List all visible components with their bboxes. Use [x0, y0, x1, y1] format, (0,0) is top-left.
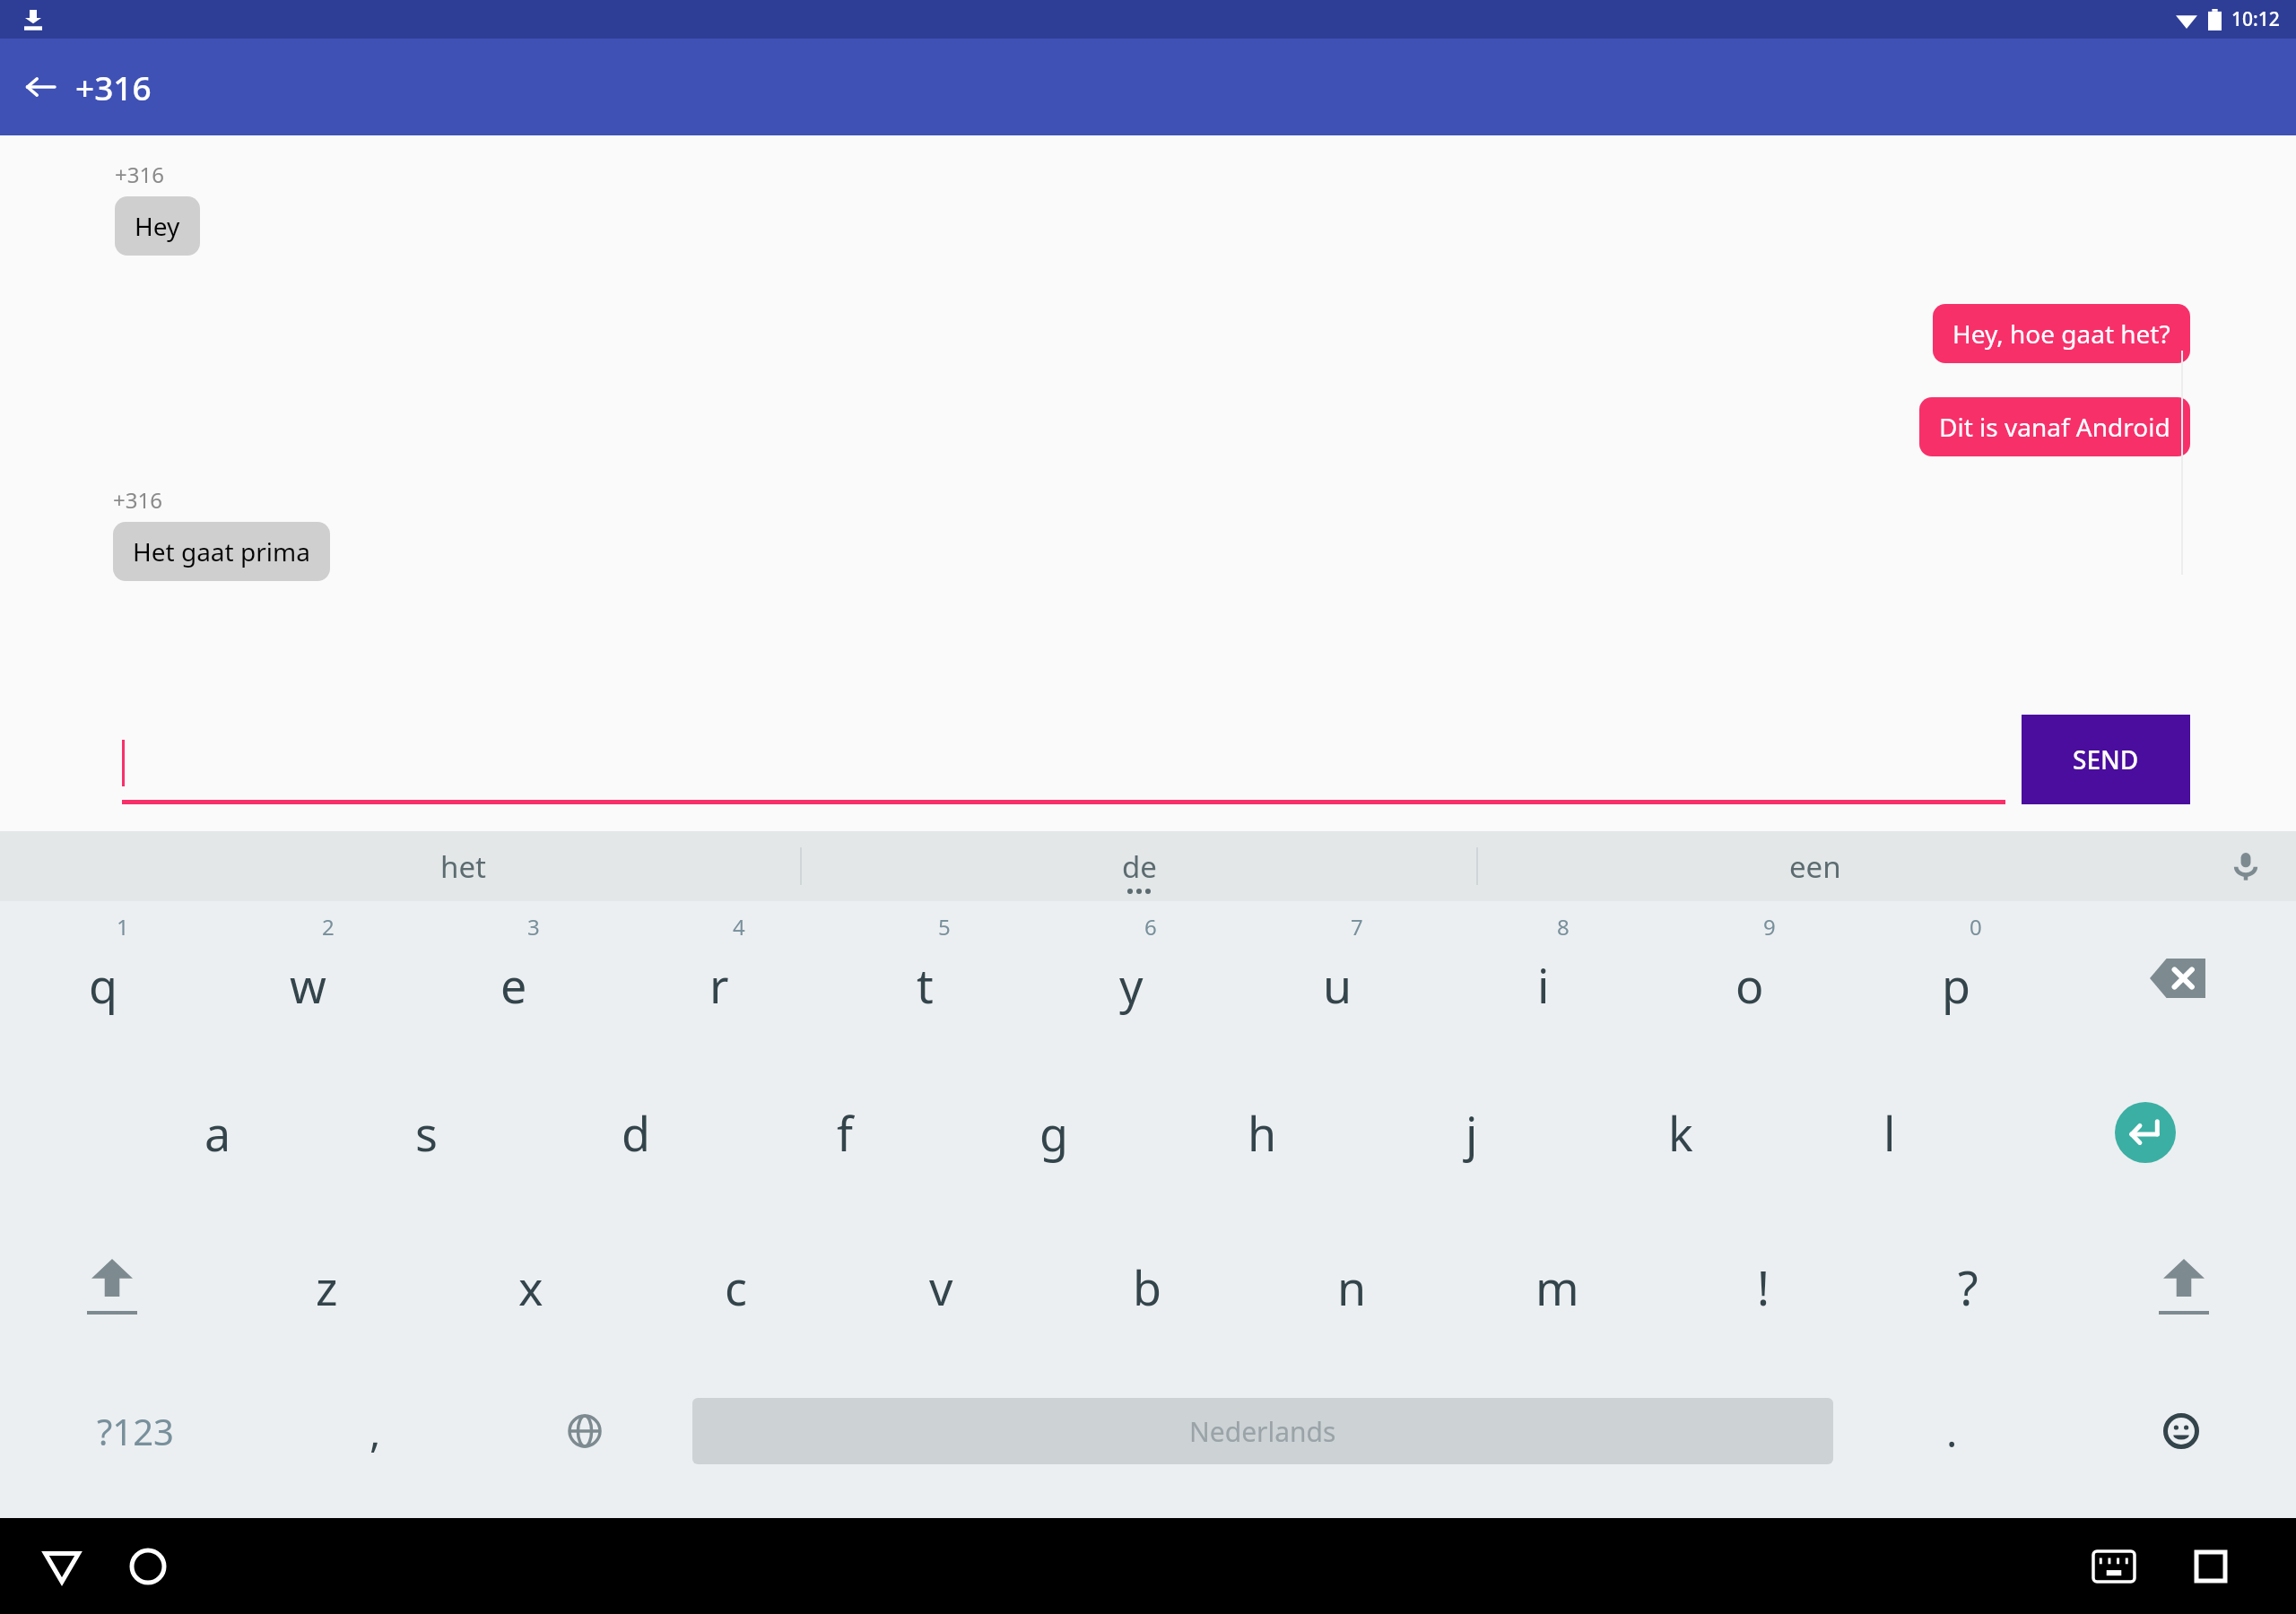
- staticText: y: [1119, 953, 1144, 1017]
- button[interactable]: 7: [1234, 901, 1440, 1055]
- button[interactable]: x: [429, 1210, 633, 1364]
- button[interactable]: Shift: [0, 1210, 224, 1364]
- staticText: z: [316, 1255, 338, 1319]
- button[interactable]: SEND: [2022, 715, 2190, 804]
- button[interactable]: b: [1044, 1210, 1249, 1364]
- staticText: g: [1039, 1101, 1068, 1165]
- button[interactable]: Back: [32, 1537, 91, 1596]
- staticText: 8: [1557, 912, 1570, 941]
- button[interactable]: Keyboard: [2084, 1537, 2144, 1596]
- staticText: een: [1789, 846, 1841, 887]
- button[interactable]: Emoji: [2066, 1364, 2296, 1498]
- staticText: k: [1668, 1101, 1693, 1165]
- button[interactable]: Dit is vanaf Android: [1919, 397, 2190, 456]
- staticText: w: [290, 953, 326, 1017]
- staticText: 10:12: [2231, 6, 2280, 32]
- staticText: a: [204, 1101, 231, 1165]
- staticText: .: [1946, 1403, 1958, 1460]
- staticText: ?: [1958, 1255, 1979, 1319]
- button[interactable]: Home: [118, 1537, 178, 1596]
- staticText: x: [518, 1255, 544, 1319]
- button[interactable]: ,: [271, 1364, 480, 1498]
- button[interactable]: d: [531, 1055, 740, 1210]
- staticText: u: [1323, 953, 1352, 1017]
- staticText: d: [622, 1101, 650, 1165]
- button[interactable]: ?: [1865, 1210, 2071, 1364]
- button[interactable]: f: [740, 1055, 949, 1210]
- button[interactable]: ?123: [0, 1364, 271, 1498]
- button[interactable]: a: [114, 1055, 322, 1210]
- staticText: t: [917, 953, 934, 1017]
- staticText: p: [1942, 953, 1970, 1017]
- staticText: h: [1248, 1101, 1277, 1165]
- button[interactable]: h: [1158, 1055, 1367, 1210]
- staticText: i: [1537, 953, 1550, 1017]
- button[interactable]: j: [1367, 1055, 1576, 1210]
- staticText: b: [1133, 1255, 1161, 1319]
- staticText: +316: [115, 160, 164, 189]
- button[interactable]: 6: [1028, 901, 1234, 1055]
- staticText: +316: [75, 65, 152, 109]
- staticText: 2: [322, 912, 335, 941]
- staticText: ,: [370, 1403, 381, 1460]
- staticText: l: [1883, 1101, 1896, 1165]
- staticText: Hey: [135, 209, 180, 243]
- button[interactable]: Hey: [115, 196, 200, 256]
- button[interactable]: m: [1455, 1210, 1660, 1364]
- button[interactable]: het: [126, 831, 800, 901]
- button[interactable]: s: [322, 1055, 531, 1210]
- staticText: 3: [527, 912, 540, 941]
- button[interactable]: 0: [1853, 901, 2059, 1055]
- staticText: Dit is vanaf Android: [1939, 410, 2170, 444]
- button[interactable]: g: [949, 1055, 1158, 1210]
- button[interactable]: k: [1576, 1055, 1785, 1210]
- button[interactable]: l: [1785, 1055, 1994, 1210]
- button[interactable]: Enter: [1994, 1055, 2296, 1210]
- staticText: de: [1122, 846, 1157, 887]
- button[interactable]: 8: [1440, 901, 1647, 1055]
- button[interactable]: een: [1478, 831, 2152, 901]
- staticText: r: [709, 953, 729, 1017]
- staticText: Hey, hoe gaat het?: [1952, 317, 2170, 351]
- button[interactable]: 3: [411, 901, 616, 1055]
- staticText: Het gaat prima: [133, 534, 310, 568]
- staticText: f: [837, 1101, 853, 1165]
- staticText: c: [725, 1255, 747, 1319]
- staticText: 9: [1763, 912, 1776, 941]
- button[interactable]: Shift: [2071, 1210, 2296, 1364]
- button[interactable]: z: [224, 1210, 429, 1364]
- button[interactable]: c: [633, 1210, 839, 1364]
- staticText: het: [440, 846, 486, 887]
- button[interactable]: n: [1249, 1210, 1455, 1364]
- button[interactable]: [122, 734, 2005, 804]
- staticText: q: [89, 953, 117, 1017]
- button[interactable]: 9: [1647, 901, 1853, 1055]
- staticText: s: [415, 1101, 438, 1165]
- staticText: m: [1535, 1255, 1579, 1319]
- button[interactable]: Change language: [480, 1364, 689, 1498]
- button[interactable]: de: [802, 831, 1476, 901]
- staticText: j: [1465, 1101, 1478, 1165]
- button[interactable]: 1: [0, 901, 205, 1055]
- staticText: 0: [1970, 912, 1982, 941]
- staticText: Nederlands: [1189, 1413, 1336, 1450]
- staticText: 4: [733, 912, 745, 941]
- button[interactable]: Voice input: [2221, 841, 2271, 891]
- button[interactable]: .: [1837, 1364, 2066, 1498]
- staticText: o: [1735, 953, 1764, 1017]
- staticText: +316: [113, 485, 162, 515]
- button[interactable]: Back: [13, 59, 68, 115]
- button[interactable]: Nederlands: [692, 1398, 1833, 1464]
- button[interactable]: 5: [822, 901, 1028, 1055]
- staticText: n: [1337, 1255, 1367, 1319]
- button[interactable]: Hey, hoe gaat het?: [1933, 304, 2190, 363]
- button[interactable]: Het gaat prima: [113, 522, 330, 581]
- button[interactable]: Backspace: [2059, 901, 2296, 1055]
- button[interactable]: 4: [616, 901, 822, 1055]
- staticText: ?123: [97, 1407, 174, 1455]
- staticText: 7: [1351, 912, 1363, 941]
- button[interactable]: 2: [205, 901, 411, 1055]
- button[interactable]: !: [1660, 1210, 1865, 1364]
- button[interactable]: Recent apps: [2181, 1537, 2240, 1596]
- button[interactable]: v: [839, 1210, 1044, 1364]
